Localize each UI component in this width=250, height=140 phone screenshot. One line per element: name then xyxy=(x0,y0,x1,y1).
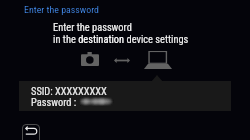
button[interactable]: Back xyxy=(22,124,40,140)
staticText: Enter the password xyxy=(53,21,132,33)
staticText: Password : xyxy=(31,96,77,108)
staticText: SSID: XXXXXXXXX xyxy=(31,85,107,97)
staticText: in the destination device settings xyxy=(53,33,189,45)
staticText: Enter the password xyxy=(24,4,100,16)
